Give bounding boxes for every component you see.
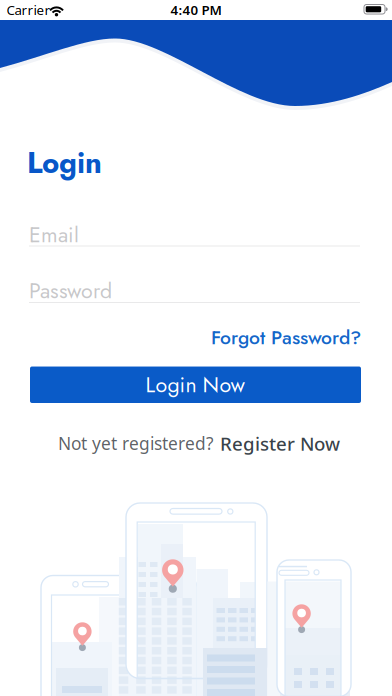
button[interactable]: Register Now	[220, 431, 340, 456]
staticText: Login Now	[145, 369, 245, 400]
staticText: Carrier	[6, 1, 50, 19]
staticText: Register Now	[220, 431, 340, 456]
staticText: 4:40 PM	[170, 1, 221, 19]
staticText: Not yet registered?	[58, 432, 214, 455]
button[interactable]: Forgot Password?	[211, 323, 361, 351]
button[interactable]: Login Now	[30, 366, 361, 403]
staticText: Forgot Password?	[211, 323, 361, 351]
button[interactable]: Password	[29, 275, 360, 302]
button[interactable]: Email	[29, 219, 360, 245]
staticText: Login	[27, 141, 102, 184]
staticText: Password	[29, 275, 112, 306]
staticText: Email	[29, 219, 79, 250]
